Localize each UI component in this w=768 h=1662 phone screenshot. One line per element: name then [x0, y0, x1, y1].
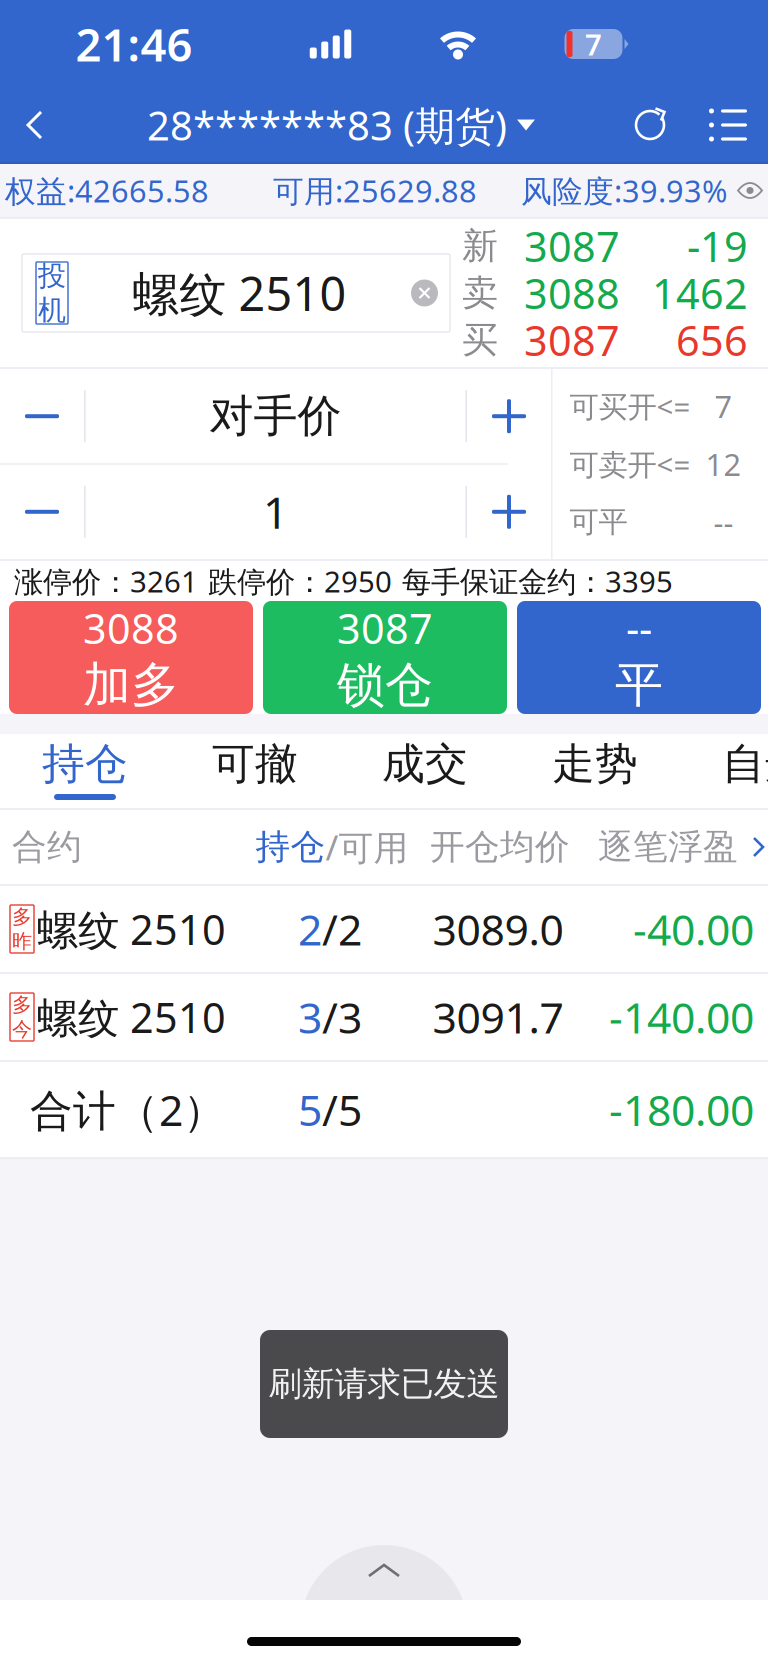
button[interactable]: Increase	[467, 465, 551, 559]
staticText: 656	[676, 313, 748, 367]
button[interactable]: 多	[0, 886, 768, 972]
button[interactable]: Toggle amounts	[727, 164, 768, 216]
staticText: -40.00	[633, 901, 754, 957]
button[interactable]: Decrease	[0, 465, 84, 559]
staticText: /5	[322, 1081, 362, 1138]
staticText: 3	[298, 989, 322, 1045]
staticText: 机	[38, 293, 66, 327]
button[interactable]: 3087	[263, 601, 507, 714]
staticText: 可平	[570, 504, 628, 540]
button[interactable]: 成交	[340, 734, 510, 808]
staticText: 1462	[652, 266, 748, 320]
staticText: 刷新请求已发送	[268, 1363, 499, 1404]
staticText: /3	[322, 989, 362, 1045]
staticText: 锁仓	[337, 655, 433, 714]
staticText: 自选	[722, 738, 768, 790]
staticText: 投	[38, 259, 66, 293]
staticText: 新	[462, 224, 498, 268]
button[interactable]: Menu	[688, 88, 768, 162]
staticText: 2	[298, 901, 322, 957]
staticText: 平	[615, 655, 663, 714]
button[interactable]: 自选	[680, 734, 768, 808]
staticText: 今	[12, 1017, 32, 1042]
staticText: 21:46	[75, 14, 192, 74]
staticText: 1	[263, 483, 288, 541]
staticText: 走势	[552, 738, 638, 790]
staticText: 7	[715, 386, 733, 426]
staticText: 5	[298, 1081, 322, 1138]
staticText: -180.00	[609, 1081, 754, 1138]
button[interactable]: 持仓	[0, 734, 170, 808]
staticText: --	[626, 601, 652, 655]
staticText: 昨	[12, 929, 32, 954]
staticText: 权益:42665.58	[5, 170, 209, 211]
staticText: -19	[687, 219, 748, 273]
staticText: 成交	[382, 738, 468, 790]
staticText: 跌停价：2950	[208, 561, 392, 600]
button[interactable]: 28*******83 (期货)	[147, 88, 535, 162]
staticText: 7	[585, 24, 602, 63]
staticText: 可买开<=	[570, 386, 691, 425]
staticText: 螺纹 2510	[37, 902, 226, 956]
staticText: 28*******83 (期货)	[147, 98, 507, 151]
staticText: /2	[322, 901, 362, 957]
staticText: -140.00	[609, 989, 754, 1045]
staticText: 3088	[83, 601, 179, 655]
staticText: 可用:25629.88	[273, 170, 477, 211]
button[interactable]: 投	[22, 254, 450, 332]
staticText: 3087	[524, 313, 620, 367]
staticText: 3088	[524, 266, 620, 320]
staticText: 对手价	[209, 389, 341, 443]
staticText: 加多	[83, 655, 179, 714]
staticText: 螺纹 2510	[37, 990, 226, 1044]
staticText: 多	[12, 992, 32, 1017]
button[interactable]: Increase	[467, 369, 551, 463]
staticText: 合约	[12, 826, 82, 868]
staticText: 螺纹 2510	[132, 262, 346, 324]
staticText: 卖	[462, 271, 498, 315]
staticText: 可卖开<=	[570, 444, 691, 483]
staticText: 涨停价：3261	[14, 561, 198, 600]
staticText: 12	[706, 444, 742, 484]
staticText: 多	[12, 904, 32, 929]
button[interactable]: 可撤	[170, 734, 340, 808]
staticText: 开仓均价	[430, 826, 570, 868]
button[interactable]: Decrease	[0, 369, 84, 463]
button[interactable]: --	[517, 601, 761, 714]
staticText: 3087	[524, 219, 620, 273]
staticText: 持仓	[42, 738, 128, 790]
staticText: 持仓	[255, 826, 325, 868]
staticText: 合计（2）	[30, 1081, 226, 1138]
staticText: /可用	[325, 824, 408, 870]
staticText: 风险度:39.93%	[521, 170, 727, 211]
staticText: 可撤	[212, 738, 298, 790]
staticText: 3089.0	[432, 901, 563, 957]
staticText: 3087	[337, 601, 433, 655]
button[interactable]: Back	[0, 88, 70, 162]
button[interactable]: 走势	[510, 734, 680, 808]
button[interactable]: 3088	[9, 601, 253, 714]
staticText: 每手保证金约：3395	[402, 561, 673, 600]
button[interactable]: 多	[0, 974, 768, 1060]
staticText: 逐笔浮盈	[598, 826, 738, 868]
staticText: 买	[462, 318, 498, 362]
button[interactable]: Refresh	[612, 88, 688, 162]
staticText: --	[714, 502, 734, 542]
staticText: 3091.7	[432, 989, 563, 1045]
